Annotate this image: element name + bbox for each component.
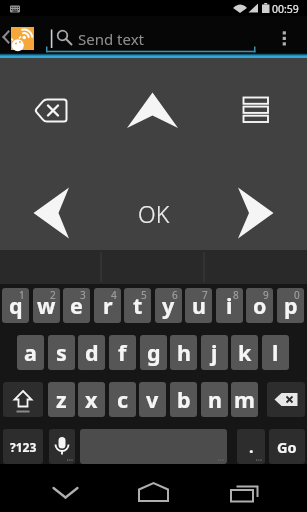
button[interactable]: c: [109, 382, 136, 417]
button[interactable]: b: [170, 382, 197, 417]
button[interactable]: j: [201, 335, 228, 370]
staticText: .: [249, 436, 254, 458]
button[interactable]: u: [185, 288, 212, 323]
button[interactable]: Send text: [46, 20, 256, 53]
button[interactable]: l: [262, 335, 289, 370]
staticText: d: [85, 338, 99, 367]
button[interactable]: [49, 429, 75, 464]
staticText: i: [226, 291, 233, 320]
button[interactable]: w: [33, 288, 60, 323]
button[interactable]: ?123: [3, 429, 43, 464]
staticText: 2: [50, 288, 56, 302]
button[interactable]: m: [231, 382, 258, 417]
staticText: n: [208, 385, 222, 414]
staticText: f: [118, 338, 127, 367]
button[interactable]: h: [170, 335, 197, 370]
button[interactable]: [25, 468, 105, 508]
button[interactable]: o: [246, 288, 273, 323]
staticText: l: [272, 338, 279, 367]
staticText: c: [117, 385, 129, 414]
staticText: s: [56, 338, 67, 367]
staticText: o: [253, 291, 267, 320]
staticText: 00:59: [272, 2, 299, 14]
button[interactable]: p: [277, 288, 304, 323]
button[interactable]: [102, 58, 205, 160]
button[interactable]: [267, 382, 305, 417]
staticText: 6: [172, 288, 178, 302]
button[interactable]: i: [216, 288, 243, 323]
button[interactable]: n: [201, 382, 228, 417]
button[interactable]: r: [94, 288, 121, 323]
staticText: Send text: [78, 29, 145, 49]
button[interactable]: [102, 160, 205, 250]
staticText: 3: [80, 288, 86, 302]
staticText: OK: [138, 198, 170, 229]
staticText: t: [133, 291, 143, 320]
button[interactable]: [0, 58, 102, 160]
button[interactable]: e: [63, 288, 90, 323]
staticText: 9: [263, 288, 269, 302]
staticText: Go: [277, 437, 297, 457]
button[interactable]: s: [48, 335, 75, 370]
staticText: ?123: [10, 439, 37, 455]
button[interactable]: x: [78, 382, 105, 417]
button[interactable]: [11, 27, 34, 50]
button[interactable]: a: [17, 335, 44, 370]
button[interactable]: f: [109, 335, 136, 370]
button[interactable]: [113, 468, 193, 508]
staticText: 8: [233, 288, 239, 302]
staticText: h: [177, 338, 191, 367]
staticText: 1: [19, 288, 25, 302]
button[interactable]: [3, 382, 43, 417]
button[interactable]: g: [140, 335, 167, 370]
button[interactable]: [205, 58, 307, 160]
button[interactable]: v: [139, 382, 166, 417]
button[interactable]: k: [231, 335, 258, 370]
button[interactable]: [0, 160, 102, 250]
staticText: g: [147, 338, 161, 367]
button[interactable]: [205, 160, 307, 250]
staticText: 4: [111, 288, 117, 302]
button[interactable]: Go: [269, 429, 305, 464]
staticText: k: [238, 338, 252, 367]
staticText: 7: [202, 288, 208, 302]
button[interactable]: t: [124, 288, 151, 323]
staticText: z: [56, 385, 67, 414]
button[interactable]: q: [2, 288, 29, 323]
button[interactable]: [271, 20, 301, 50]
staticText: u: [192, 291, 206, 320]
button[interactable]: z: [48, 382, 75, 417]
staticText: q: [9, 291, 23, 320]
staticText: w: [37, 291, 56, 320]
staticText: 0: [294, 288, 300, 302]
button[interactable]: d: [78, 335, 105, 370]
button[interactable]: y: [155, 288, 182, 323]
staticText: j: [211, 338, 218, 367]
staticText: p: [284, 291, 298, 320]
staticText: m: [234, 385, 255, 414]
staticText: v: [146, 385, 159, 414]
button[interactable]: .: [237, 429, 265, 464]
staticText: b: [177, 385, 191, 414]
staticText: e: [70, 291, 83, 320]
button[interactable]: [201, 468, 281, 508]
staticText: r: [103, 291, 113, 320]
staticText: a: [24, 338, 37, 367]
staticText: y: [162, 291, 175, 320]
staticText: 5: [141, 288, 147, 302]
staticText: x: [85, 385, 98, 414]
